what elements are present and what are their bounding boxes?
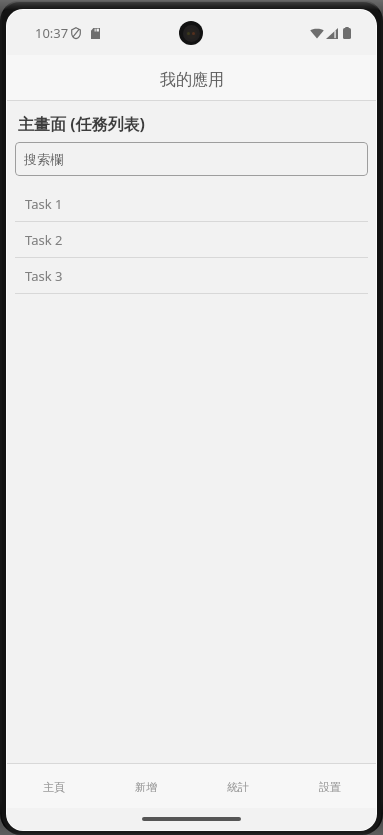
button[interactable]: 主頁 <box>7 764 100 808</box>
button[interactable]: 新增 <box>100 764 192 808</box>
staticText: 主頁 <box>43 780 65 794</box>
button[interactable]: 統計 <box>192 764 284 808</box>
staticText: Task 1 <box>25 195 63 213</box>
staticText: 主畫面 (任務列表) <box>18 113 146 135</box>
staticText: Task 2 <box>25 231 63 249</box>
staticText: 新增 <box>135 780 157 794</box>
staticText: 我的應用 <box>160 70 224 90</box>
staticText: 10:37 <box>35 24 69 42</box>
button[interactable]: 搜索欄 <box>15 142 368 176</box>
staticText: 統計 <box>227 780 249 794</box>
staticText: 搜索欄 <box>24 151 63 167</box>
staticText: 設置 <box>319 780 341 794</box>
button[interactable]: Task 2 <box>7 222 376 258</box>
staticText: Task 3 <box>25 267 63 285</box>
button[interactable]: 設置 <box>284 764 376 808</box>
button[interactable]: Task 3 <box>7 258 376 294</box>
button[interactable]: Task 1 <box>7 186 376 222</box>
